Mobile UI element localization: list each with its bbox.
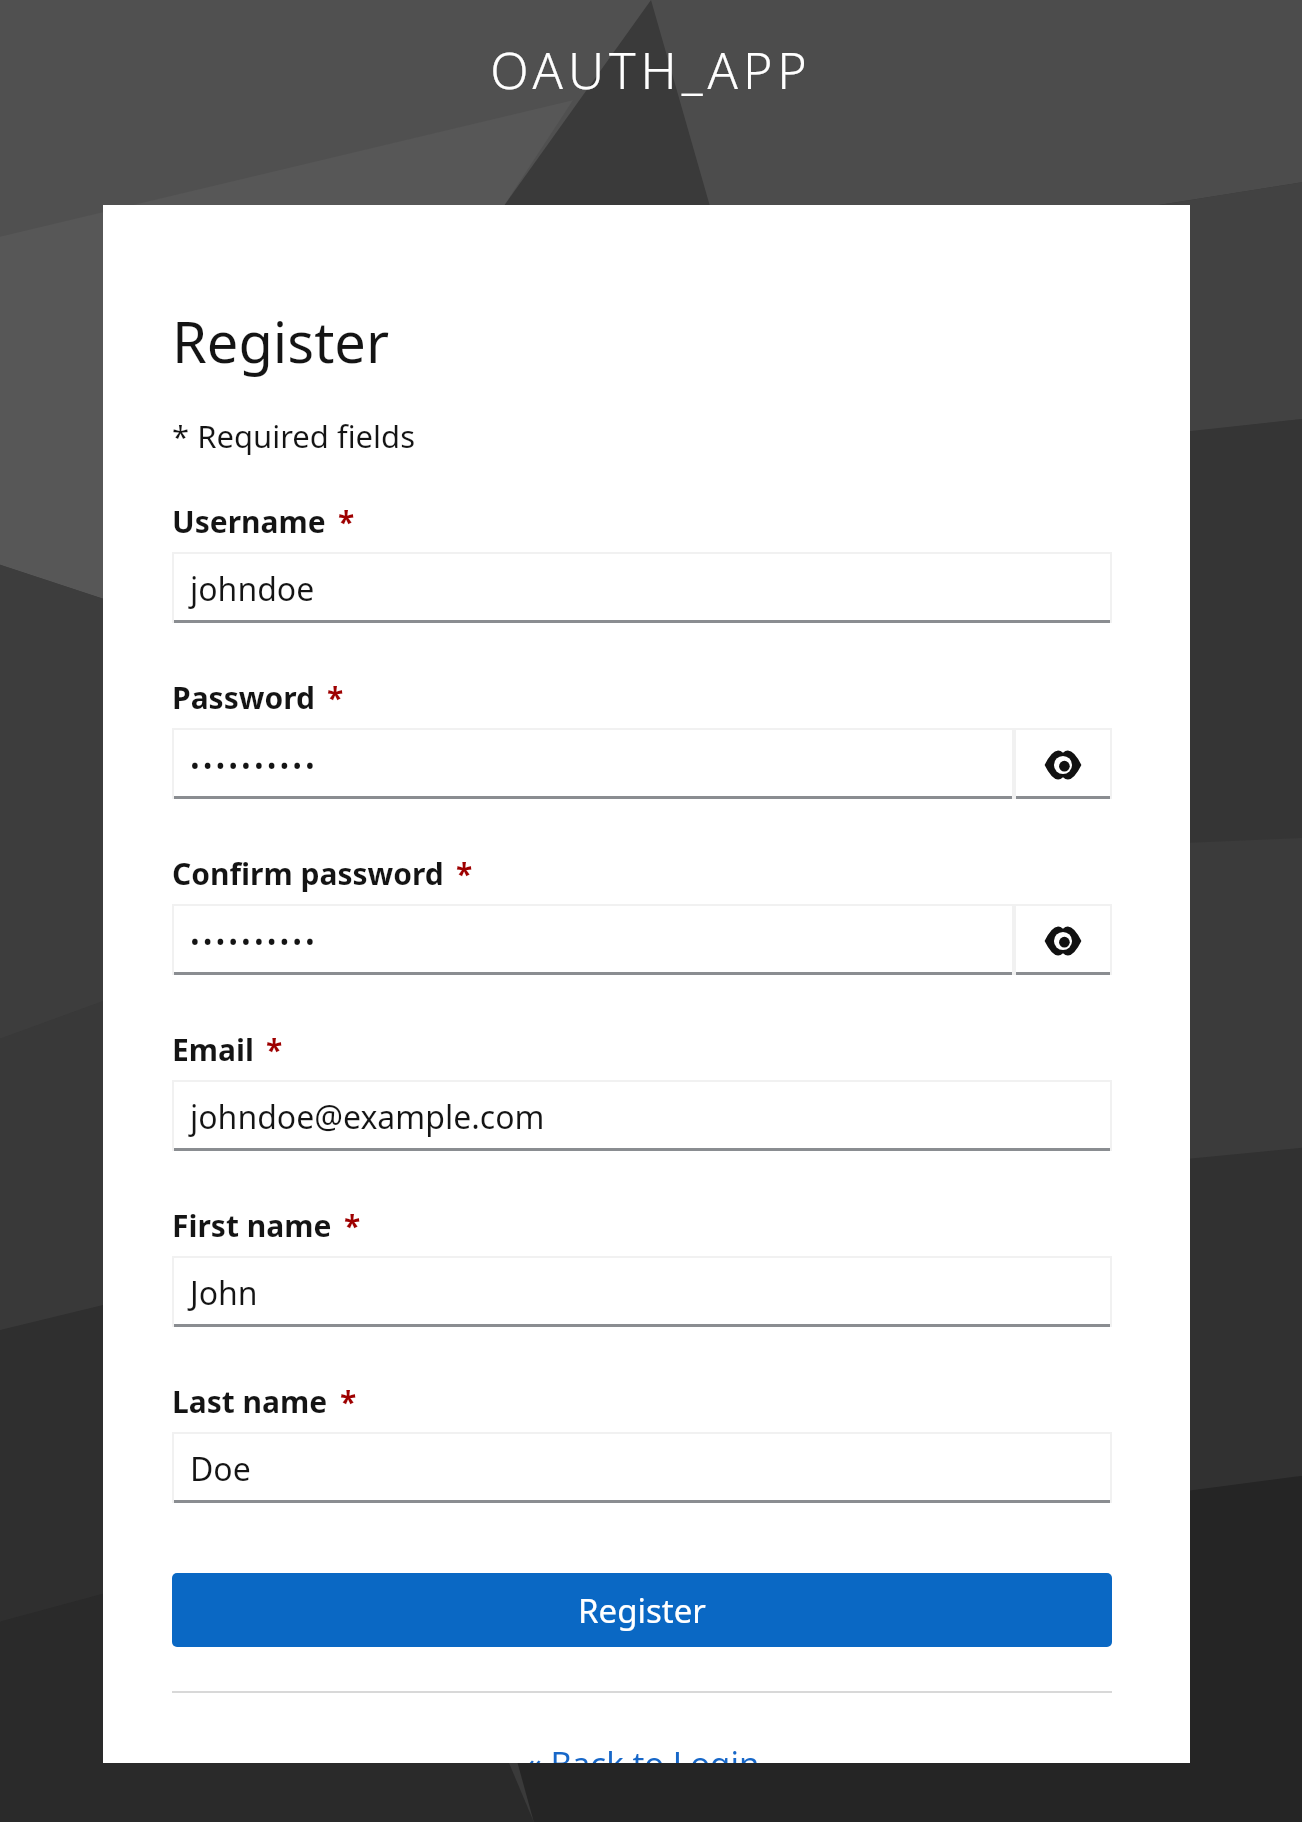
button[interactable]: John	[174, 1258, 1110, 1327]
staticText: *	[338, 501, 355, 542]
staticText: ••••••••••	[190, 747, 318, 782]
staticText: *	[340, 1381, 357, 1422]
button[interactable]: « Back to Login	[172, 1741, 1112, 1763]
staticText: Confirm password	[172, 853, 444, 894]
staticText: *	[456, 853, 473, 894]
staticText: First name	[172, 1205, 332, 1246]
staticText: johndoe	[190, 567, 315, 611]
button[interactable]: johndoe@example.com	[174, 1082, 1110, 1151]
staticText: johndoe@example.com	[190, 1095, 545, 1139]
button[interactable]: johndoe	[174, 554, 1110, 623]
staticText: Username	[172, 501, 326, 542]
button[interactable]: Show password	[1016, 730, 1110, 799]
staticText: Register	[172, 303, 390, 379]
staticText: *	[266, 1029, 283, 1070]
button[interactable]: Register	[172, 1573, 1112, 1647]
staticText: Password	[172, 677, 315, 718]
button[interactable]: ••••••••••	[174, 730, 1012, 799]
staticText: Register	[578, 1588, 706, 1633]
button[interactable]: Show password	[1016, 906, 1110, 975]
staticText: OAUTH_APP	[0, 36, 1302, 104]
staticText: Last name	[172, 1381, 328, 1422]
staticText: ••••••••••	[190, 923, 318, 958]
staticText: * Required fields	[172, 415, 415, 457]
staticText: John	[190, 1271, 258, 1315]
staticText: « Back to Login	[525, 1741, 760, 1763]
button[interactable]: ••••••••••	[174, 906, 1012, 975]
staticText: Email	[172, 1029, 254, 1070]
other: Show password	[1043, 921, 1083, 961]
staticText: *	[327, 677, 344, 718]
staticText: Doe	[190, 1447, 251, 1491]
button[interactable]: Doe	[174, 1434, 1110, 1503]
other: Show password	[1043, 745, 1083, 785]
staticText: *	[344, 1205, 361, 1246]
